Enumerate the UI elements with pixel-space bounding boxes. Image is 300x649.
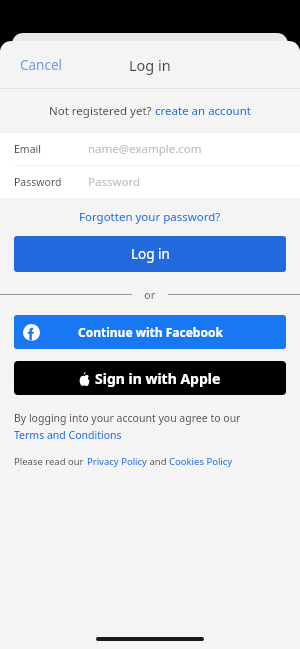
staticText: Cancel — [20, 56, 63, 74]
button[interactable]: Forgotten your password? — [73, 205, 227, 229]
staticText: name@example.com — [88, 141, 202, 157]
other: Facebook — [23, 324, 40, 341]
button[interactable]: Cancel — [10, 50, 73, 80]
staticText: Forgotten your password? — [79, 209, 221, 225]
staticText: Privacy Policy — [87, 455, 147, 468]
button[interactable]: Log in — [14, 236, 286, 272]
button[interactable]: Email — [0, 133, 300, 165]
button[interactable]: create an account — [155, 103, 251, 119]
staticText: create an account — [155, 103, 251, 119]
other: Apple — [79, 372, 90, 386]
staticText: Not registered yet? — [49, 103, 155, 119]
staticText: and — [147, 455, 169, 468]
staticText: Sign in with Apple — [95, 369, 221, 388]
staticText: Email — [14, 142, 41, 156]
button[interactable]: Terms and Conditions — [14, 428, 122, 442]
button[interactable]: Facebook — [14, 315, 286, 349]
button[interactable]: Privacy Policy — [87, 455, 147, 468]
staticText: By logging into your account you agree t… — [14, 411, 241, 425]
staticText: Continue with Facebook — [78, 324, 223, 340]
staticText: or — [144, 287, 156, 302]
staticText: Cookies Policy — [169, 455, 233, 468]
staticText: Password — [14, 175, 62, 189]
button[interactable]: Cookies Policy — [169, 455, 233, 468]
staticText: Please read our — [14, 455, 87, 468]
staticText: Terms and Conditions — [14, 428, 122, 442]
button[interactable]: Password — [0, 166, 300, 198]
staticText: Log in — [131, 245, 170, 263]
staticText: Password — [88, 174, 141, 190]
button[interactable]: Apple — [14, 361, 286, 395]
staticText: Log in — [129, 55, 171, 75]
